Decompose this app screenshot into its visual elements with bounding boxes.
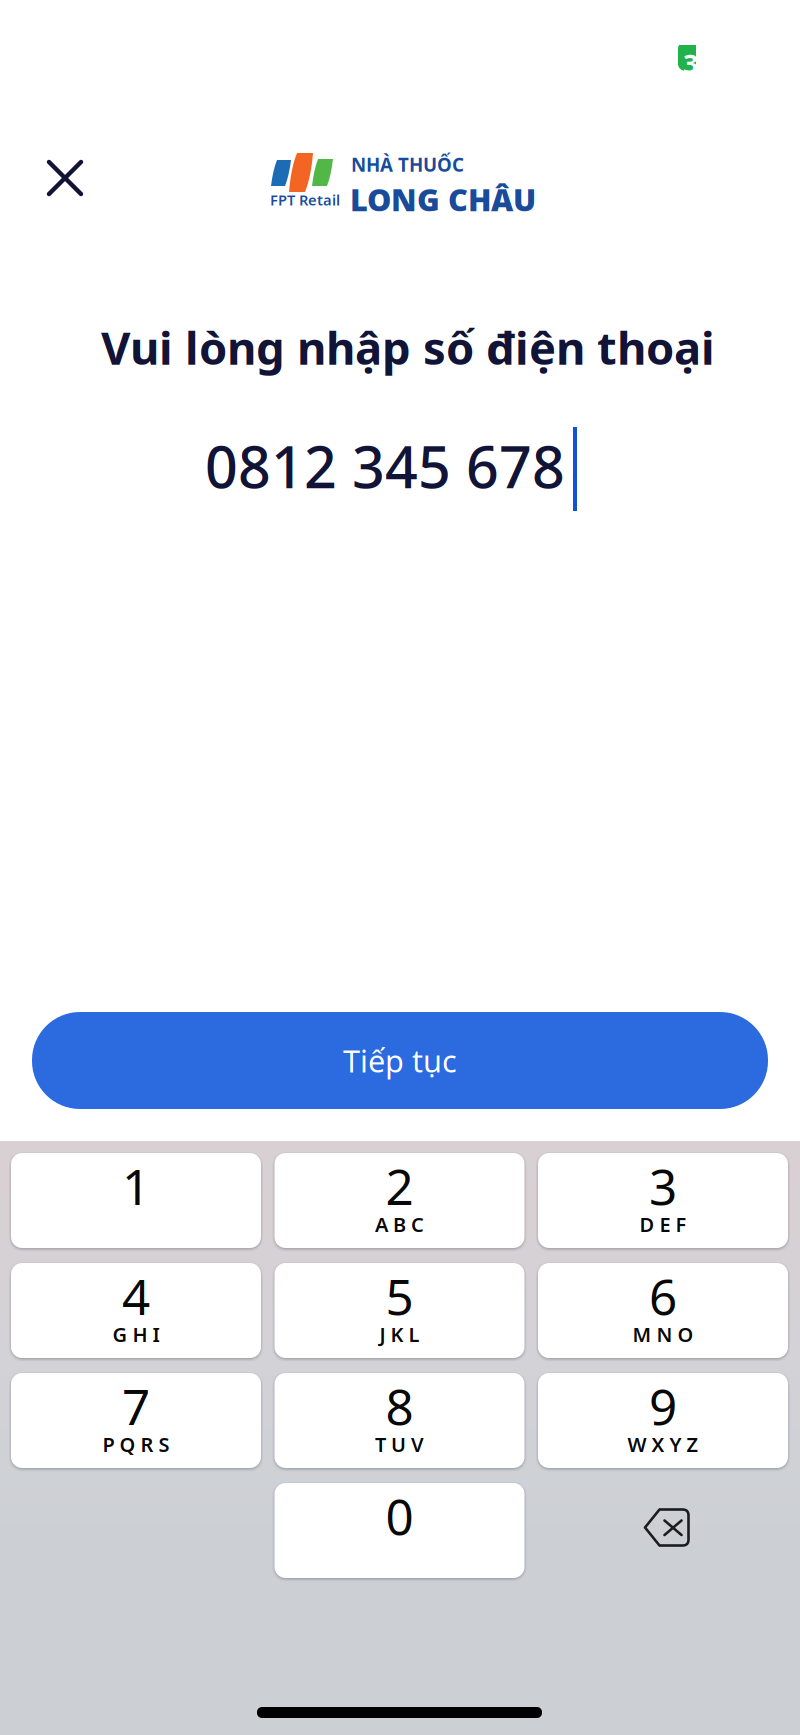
- staticText: 1: [122, 1153, 150, 1218]
- button[interactable]: Tiếp tục: [32, 1012, 768, 1109]
- staticText: 7: [122, 1373, 150, 1438]
- staticText: LONG CHÂU: [350, 179, 536, 220]
- staticText: T U V: [375, 1431, 424, 1458]
- button[interactable]: 5: [274, 1263, 524, 1358]
- staticText: Tiếp tục: [343, 1040, 457, 1081]
- staticText: Vui lòng nhập số điện thoại: [101, 317, 715, 377]
- staticText: W X Y Z: [627, 1431, 698, 1458]
- button[interactable]: 8: [274, 1373, 524, 1468]
- staticText: 4: [122, 1263, 150, 1328]
- button[interactable]: 0: [274, 1483, 524, 1578]
- button[interactable]: 7: [11, 1373, 261, 1468]
- staticText: 8: [385, 1373, 413, 1438]
- button[interactable]: 3: [538, 1153, 788, 1248]
- button[interactable]: 1: [11, 1153, 261, 1248]
- staticText: 5: [385, 1263, 413, 1328]
- button[interactable]: Close: [29, 142, 101, 214]
- staticText: 2: [385, 1153, 413, 1218]
- staticText: 0812 345 678: [205, 428, 565, 504]
- staticText: P Q R S: [102, 1431, 169, 1458]
- staticText: 6: [649, 1263, 677, 1328]
- staticText: D E F: [639, 1211, 686, 1238]
- staticText: 3: [649, 1153, 677, 1218]
- button[interactable]: 6: [538, 1263, 788, 1358]
- staticText: FPT Retail: [270, 190, 340, 209]
- staticText: NHÀ THUỐC: [351, 152, 464, 177]
- staticText: 0: [385, 1483, 413, 1548]
- button[interactable]: 9: [538, 1373, 788, 1468]
- button[interactable]: 4: [11, 1263, 261, 1358]
- staticText: J K L: [379, 1321, 419, 1348]
- staticText: 9: [649, 1373, 677, 1438]
- staticText: G H I: [112, 1321, 159, 1348]
- button[interactable]: Delete: [542, 1480, 792, 1575]
- staticText: M N O: [632, 1321, 693, 1348]
- staticText: 3: [683, 46, 698, 81]
- button[interactable]: 2: [274, 1153, 524, 1248]
- staticText: A B C: [375, 1211, 424, 1238]
